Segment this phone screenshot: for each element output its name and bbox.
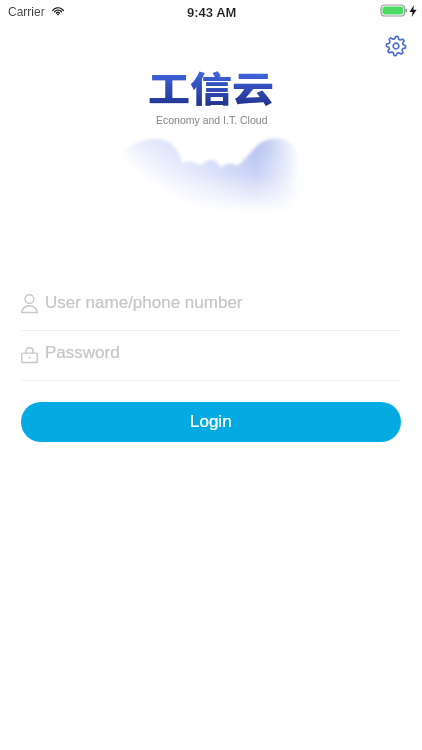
staticText: Login — [190, 412, 232, 431]
staticText: Carrier — [8, 5, 45, 18]
staticText: 工信云 — [148, 61, 275, 112]
staticText: User name/phone number — [45, 293, 243, 312]
staticText: 9:43 AM — [187, 5, 237, 20]
staticText: Economy and I.T. Cloud — [156, 114, 268, 126]
button[interactable]: Settings — [382, 32, 410, 60]
button[interactable]: Password — [21, 340, 401, 380]
staticText: Password — [45, 343, 120, 362]
button[interactable]: Login — [21, 402, 401, 442]
button[interactable]: User name/phone number — [21, 290, 401, 330]
